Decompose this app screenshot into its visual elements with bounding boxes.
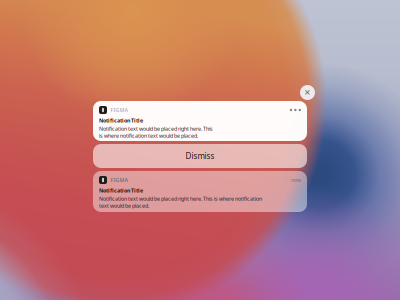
staticText: Dismiss [185, 151, 214, 161]
staticText: FIGMA [110, 176, 128, 184]
staticText: ✕ [304, 88, 311, 97]
staticText: FIGMA [110, 106, 128, 114]
button[interactable]: Close [299, 84, 316, 101]
button[interactable]: Dismiss [93, 144, 307, 168]
staticText: Notification Title [99, 117, 143, 124]
staticText: Notification Title [99, 187, 143, 194]
staticText: Notification text would be placed right … [99, 125, 213, 139]
staticText: now [291, 176, 301, 184]
staticText: Notification text would be placed right … [99, 195, 262, 209]
